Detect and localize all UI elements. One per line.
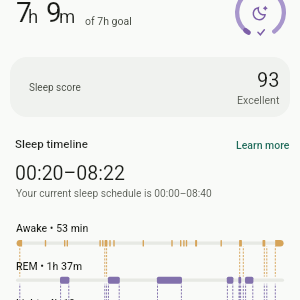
staticText: Sleep timeline [15, 136, 88, 151]
staticText: Excellent [237, 93, 280, 107]
staticText: 93 [257, 66, 280, 92]
staticText: of 7h goal [85, 14, 132, 28]
staticText: Sleep score [29, 81, 81, 94]
staticText: REM • 1h 37m [16, 259, 83, 273]
staticText: Learn more [236, 138, 290, 152]
button[interactable]: Learn more [231, 136, 295, 154]
staticText: m [59, 4, 76, 28]
button[interactable]: Sleep goal progress [235, 0, 286, 38]
staticText: Light • 4h 12m [16, 296, 85, 300]
button[interactable]: Sleep score [10, 57, 290, 117]
staticText: 7 [16, 0, 32, 29]
staticText: Awake • 53 min [16, 221, 89, 235]
staticText: Your current sleep schedule is 00:00–08:… [16, 187, 212, 200]
staticText: 00:20–08:22 [15, 160, 125, 185]
staticText: 9 [46, 0, 62, 29]
other: Sleep [253, 5, 268, 20]
staticText: h [28, 4, 39, 28]
